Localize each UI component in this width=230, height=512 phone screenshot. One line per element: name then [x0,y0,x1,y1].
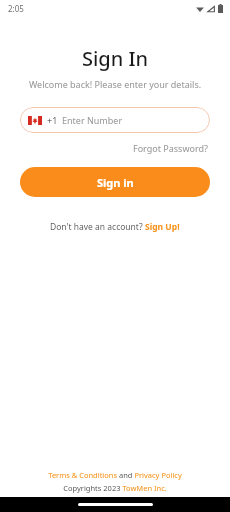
staticText: Welcome back! Please enter your details. [0,78,230,90]
button[interactable]: Terms & Conditions and Privacy Policy [44,469,186,481]
button[interactable]: Sign in [20,167,210,197]
other: Country: Canada [28,116,42,125]
staticText: Copyrights 2023 TowMen Inc. [63,483,167,493]
staticText: Forgot Password? [133,142,208,154]
staticText: +1 [47,114,58,126]
staticText: Terms & Conditions and Privacy Policy [48,470,182,480]
staticText: Enter Number [62,114,123,126]
staticText: 2:05 [8,3,24,14]
staticText: Don't have an account? [50,221,145,233]
staticText: Sign in [97,175,134,190]
button[interactable]: Forgot Password? [131,141,210,155]
staticText: Sign Up! [145,221,180,233]
staticText: Sign In [0,45,230,72]
button[interactable]: Country: Canada [20,107,210,133]
button[interactable]: Don't have an account? [46,219,184,235]
